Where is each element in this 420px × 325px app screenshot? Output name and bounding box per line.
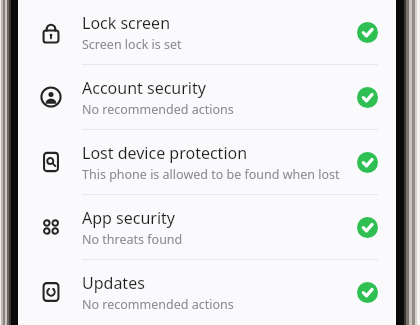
button[interactable]: App security	[18, 195, 396, 259]
other: Secure	[357, 152, 378, 173]
button[interactable]: Account security	[18, 65, 396, 129]
button[interactable]: Lost device protection	[18, 130, 396, 194]
staticText: Lock screen	[82, 12, 171, 34]
staticText: Lost device protection	[82, 142, 248, 164]
other: Secure	[357, 22, 378, 43]
staticText: App security	[82, 207, 175, 229]
staticText: This phone is allowed to be found when l…	[82, 166, 340, 183]
staticText: Screen lock is set	[82, 36, 182, 53]
staticText: No recommended actions	[82, 296, 234, 313]
staticText: No recommended actions	[82, 101, 234, 118]
other: Secure	[357, 217, 378, 238]
staticText: Updates	[82, 272, 145, 294]
button[interactable]: Lock screen	[18, 0, 396, 64]
other: Secure	[357, 87, 378, 108]
button[interactable]: Updates	[18, 260, 396, 324]
staticText: No threats found	[82, 231, 183, 248]
other: Secure	[357, 282, 378, 303]
staticText: Account security	[82, 77, 206, 99]
